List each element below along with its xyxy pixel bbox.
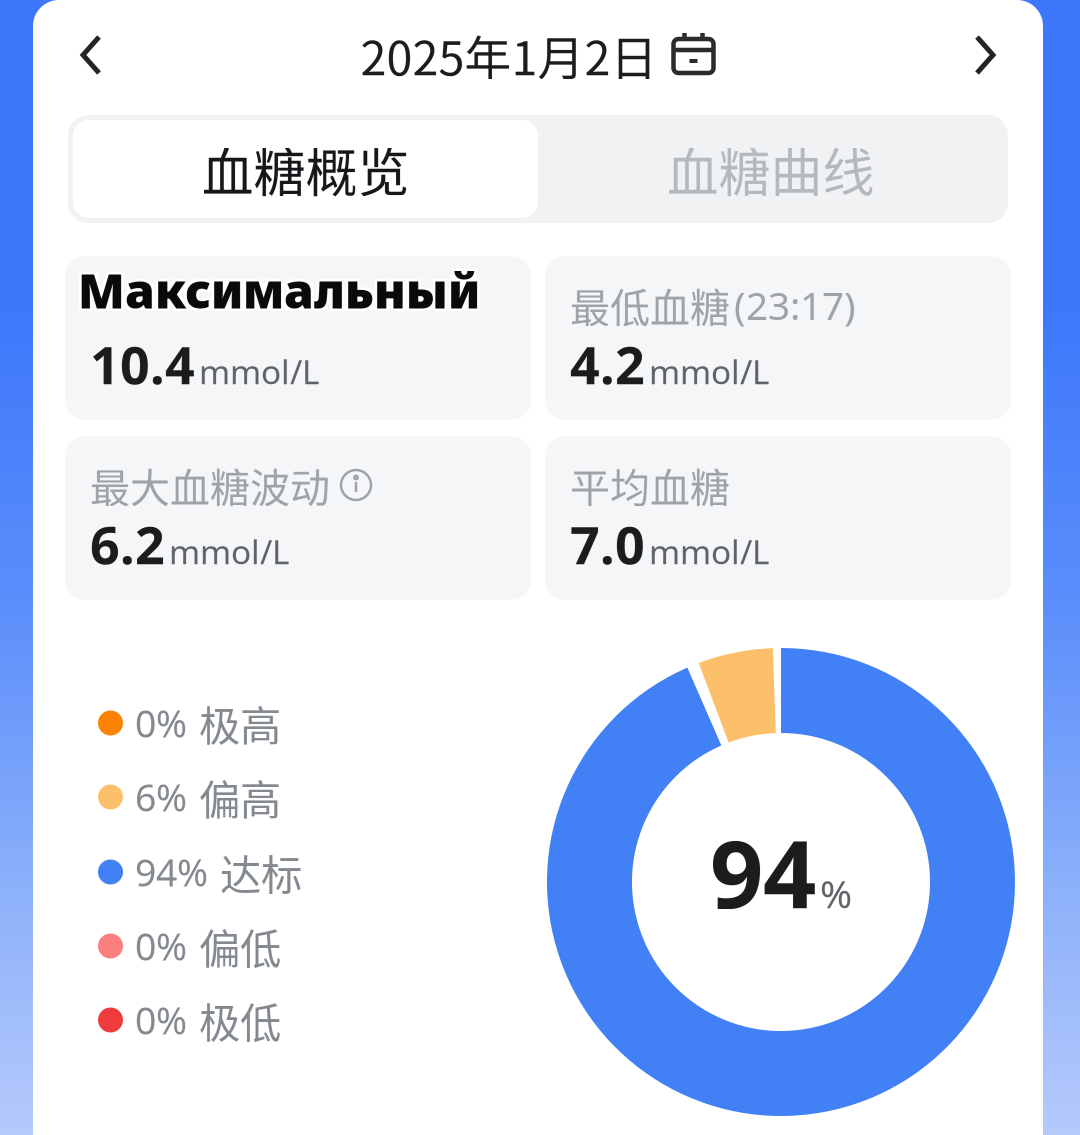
staticText: %: [820, 867, 852, 919]
staticText: 4.2: [570, 329, 645, 399]
button[interactable]: 血糖概览: [73, 120, 538, 218]
staticText: 达标: [220, 842, 302, 902]
staticText: 94: [710, 810, 816, 934]
button[interactable]: Pick date: [671, 34, 715, 76]
staticText: Максимальный: [80, 261, 482, 324]
button[interactable]: Next day: [937, 1, 1033, 109]
staticText: 偏低: [199, 916, 281, 976]
staticText: 10.4: [90, 329, 195, 399]
staticText: mmol/L: [649, 349, 769, 393]
staticText: mmol/L: [649, 529, 769, 573]
button[interactable]: 血糖曲线: [538, 120, 1003, 218]
staticText: 7.0: [570, 509, 645, 579]
staticText: 极高: [199, 693, 281, 753]
staticText: 94%: [135, 847, 208, 897]
staticText: 0%: [135, 698, 187, 748]
staticText: 0%: [135, 995, 187, 1045]
staticText: Максимальный: [75, 256, 477, 319]
staticText: mmol/L: [169, 529, 289, 573]
staticText: 2025年1月2日: [360, 21, 657, 89]
staticText: 血糖概览: [201, 131, 409, 207]
staticText: 极低: [199, 990, 281, 1050]
staticText: 最大血糖波动: [90, 456, 330, 514]
staticText: 偏高: [199, 767, 281, 827]
staticText: 最低血糖: [570, 276, 730, 334]
staticText: mmol/L: [199, 349, 319, 393]
staticText: Максимальный: [80, 256, 482, 319]
staticText: 血糖曲线: [666, 131, 874, 207]
staticText: 6.2: [90, 509, 165, 579]
button[interactable]: Previous day: [43, 1, 139, 109]
staticText: Максимальный: [75, 261, 477, 324]
staticText: 6%: [135, 772, 187, 822]
staticText: Максимальный: [78, 258, 480, 322]
staticText: (23:17): [734, 279, 856, 331]
staticText: 0%: [135, 921, 187, 971]
staticText: 平均血糖: [570, 456, 730, 514]
